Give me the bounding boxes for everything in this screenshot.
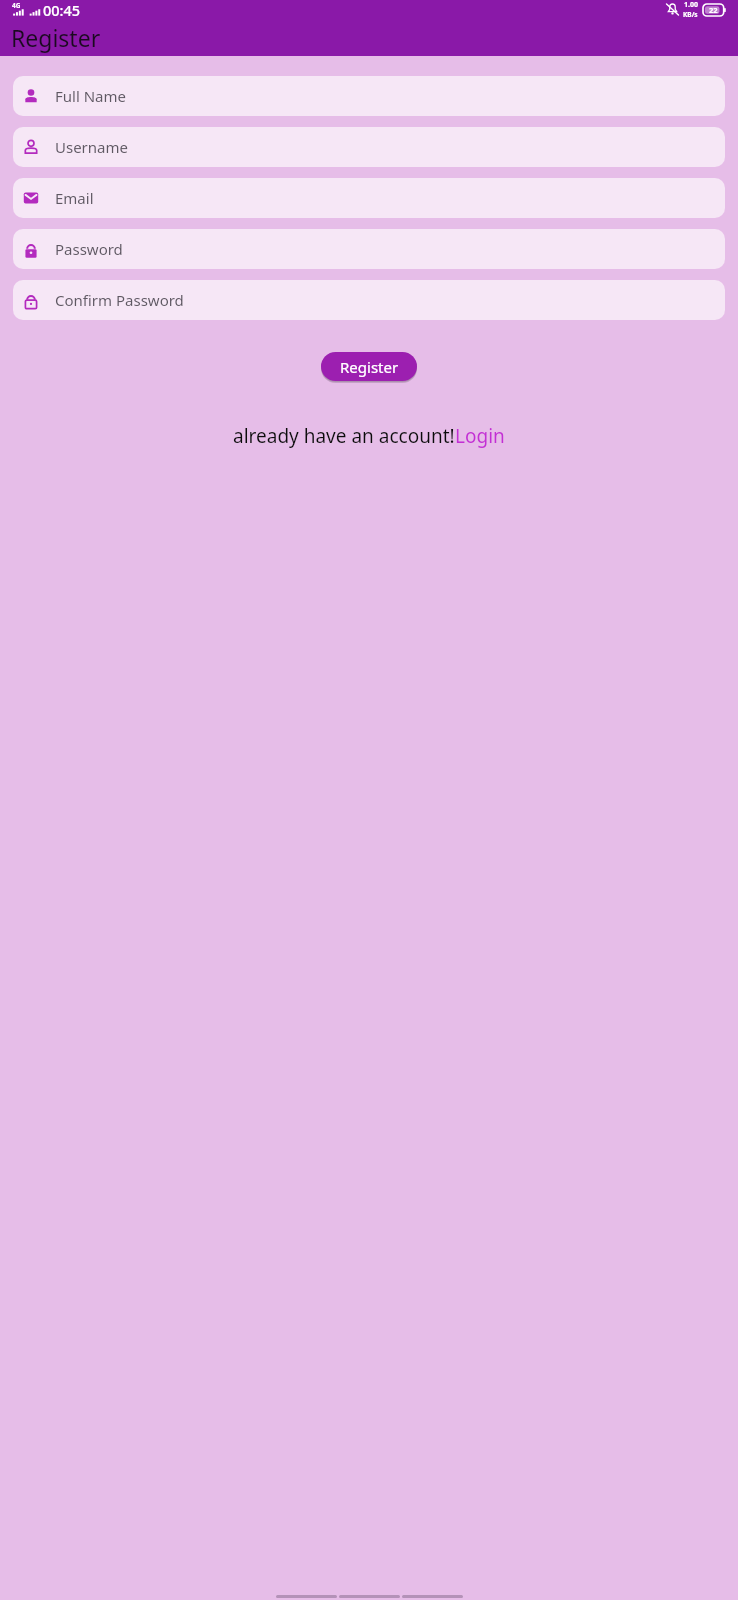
- staticText: 4G: [12, 1, 21, 10]
- staticText: Login: [455, 423, 505, 449]
- button[interactable]: Login: [455, 423, 505, 449]
- staticText: Full Name: [55, 86, 126, 106]
- staticText: Password: [55, 239, 123, 259]
- staticText: Confirm Password: [55, 290, 184, 310]
- button[interactable]: Password: [13, 229, 725, 269]
- button[interactable]: Register: [321, 352, 417, 381]
- staticText: Email: [55, 188, 94, 208]
- button[interactable]: Full Name: [13, 76, 725, 116]
- button[interactable]: Email: [13, 178, 725, 218]
- staticText: KB/s: [683, 10, 698, 19]
- staticText: already have an account!: [233, 423, 455, 449]
- button[interactable]: Confirm Password: [13, 280, 725, 320]
- button[interactable]: Recents: [402, 1595, 463, 1598]
- button[interactable]: Home: [339, 1595, 400, 1598]
- button[interactable]: Back: [276, 1595, 337, 1598]
- staticText: 1.00: [684, 0, 698, 10]
- staticText: Register: [340, 357, 399, 377]
- staticText: 22: [709, 5, 718, 15]
- staticText: Register: [11, 22, 101, 53]
- button[interactable]: Username: [13, 127, 725, 167]
- staticText: 00:45: [43, 0, 81, 19]
- staticText: Username: [55, 137, 128, 157]
